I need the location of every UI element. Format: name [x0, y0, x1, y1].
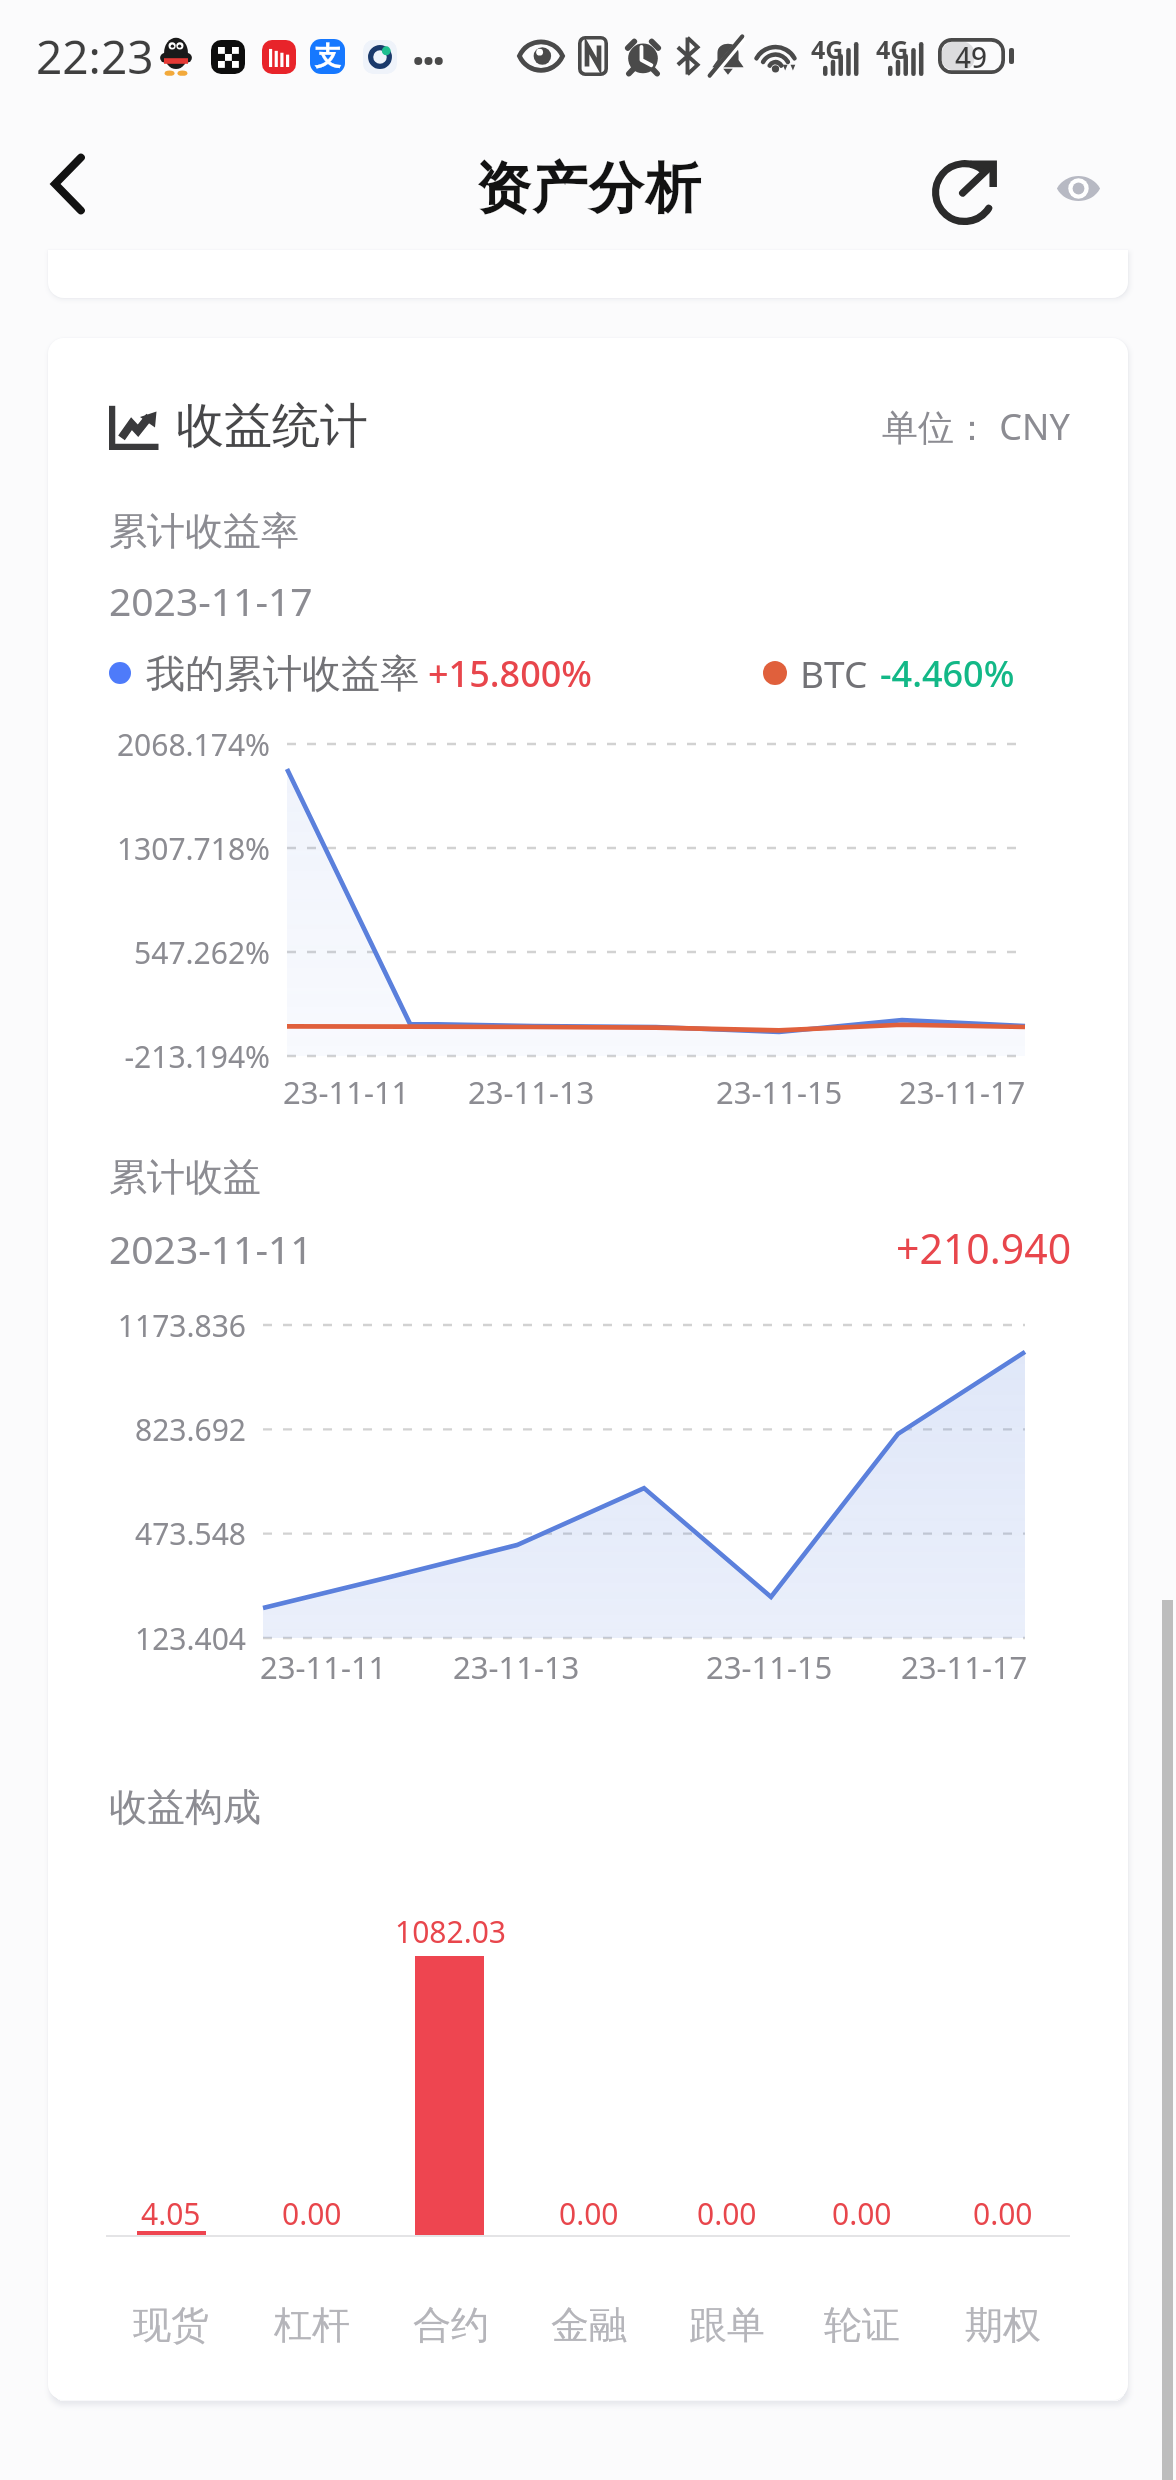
staticText: 23-11-17 [901, 1646, 1028, 1688]
staticText: +15.800% [428, 649, 593, 698]
staticText: 4.05 [141, 2193, 201, 2234]
staticText: 2023-11-17 [109, 574, 313, 627]
staticText: 473.548 [135, 1513, 246, 1554]
staticText: 547.262% [134, 932, 270, 973]
staticText: 单位： CNY [882, 402, 1070, 451]
staticText: 金融 [551, 2301, 627, 2349]
staticText: 跟单 [689, 2301, 765, 2349]
staticText: 收益统计 [176, 396, 368, 456]
staticText: 现货 [133, 2301, 209, 2349]
staticText: 23-11-11 [283, 1071, 410, 1113]
staticText: 2023-11-11 [109, 1222, 313, 1275]
staticText: 1082.03 [395, 1911, 506, 1952]
staticText: 23-11-13 [468, 1071, 595, 1113]
staticText: 我的累计收益率 [146, 649, 419, 698]
staticText: 23-11-17 [899, 1071, 1026, 1113]
staticText: 0.00 [559, 2193, 619, 2234]
staticText: 23-11-15 [716, 1071, 843, 1113]
staticText: 1307.718% [116, 828, 270, 869]
button[interactable]: Share [911, 136, 1021, 246]
staticText: 合约 [413, 2301, 489, 2349]
staticText: 4G [876, 32, 909, 66]
staticText: 4G [811, 32, 844, 66]
staticText: -4.460% [880, 649, 1015, 698]
staticText: 0.00 [282, 2193, 342, 2234]
staticText: 123.404 [135, 1618, 246, 1659]
staticText: 0.00 [697, 2193, 757, 2234]
staticText: 49 [955, 38, 988, 74]
staticText: BTC [800, 648, 868, 698]
staticText: -213.194% [124, 1036, 270, 1077]
staticText: 收益构成 [109, 1783, 261, 1831]
button[interactable]: Toggle balance visibility [1033, 143, 1123, 233]
staticText: 轮证 [824, 2301, 900, 2349]
staticText: 2068.174% [116, 724, 270, 765]
staticText: 23-11-15 [706, 1646, 833, 1688]
staticText: 杠杆 [274, 2301, 350, 2349]
staticText: 0.00 [832, 2193, 892, 2234]
staticText: 资产分析 [475, 154, 701, 223]
staticText: +210.940 [896, 1220, 1072, 1276]
staticText: 23-11-11 [260, 1646, 387, 1688]
staticText: 累计收益 [109, 1153, 261, 1201]
staticText: 1173.836 [117, 1305, 246, 1346]
staticText: 22:23 [36, 25, 154, 88]
staticText: 823.692 [135, 1409, 246, 1450]
staticText: 0.00 [973, 2193, 1033, 2234]
staticText: 期权 [965, 2301, 1041, 2349]
staticText: 23-11-13 [453, 1646, 580, 1688]
staticText: 累计收益率 [109, 507, 299, 555]
button[interactable]: Back [13, 129, 123, 239]
staticText: 支 [315, 40, 341, 73]
